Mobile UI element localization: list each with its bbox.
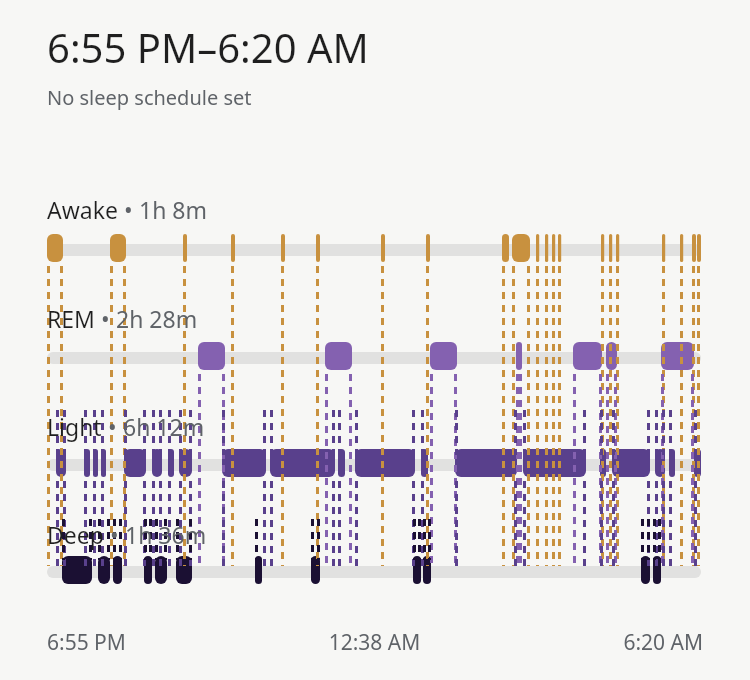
staticText: 1h 36m xyxy=(125,519,207,550)
staticText: 1h 8m xyxy=(139,194,208,225)
staticText: • xyxy=(95,303,116,334)
staticText: Awake xyxy=(47,194,118,225)
staticText: Deep xyxy=(47,519,104,550)
staticText: • xyxy=(118,194,139,225)
staticText: 6:20 AM xyxy=(484,628,703,657)
staticText: • xyxy=(104,519,125,550)
staticText: • xyxy=(102,411,123,442)
staticText: No sleep schedule set xyxy=(47,84,252,111)
staticText: 6:55 PM xyxy=(47,628,265,657)
staticText: 6:55 PM–6:20 AM xyxy=(47,20,369,74)
button[interactable]: Awake xyxy=(47,194,208,225)
button[interactable]: Light xyxy=(47,411,205,442)
staticText: 2h 28m xyxy=(116,303,198,334)
staticText: 12:38 AM xyxy=(265,628,484,657)
button[interactable]: REM xyxy=(47,303,198,334)
staticText: 6h 12m xyxy=(123,411,205,442)
button[interactable]: Deep xyxy=(47,519,207,550)
staticText: Light xyxy=(47,411,102,442)
staticText: REM xyxy=(47,303,95,334)
